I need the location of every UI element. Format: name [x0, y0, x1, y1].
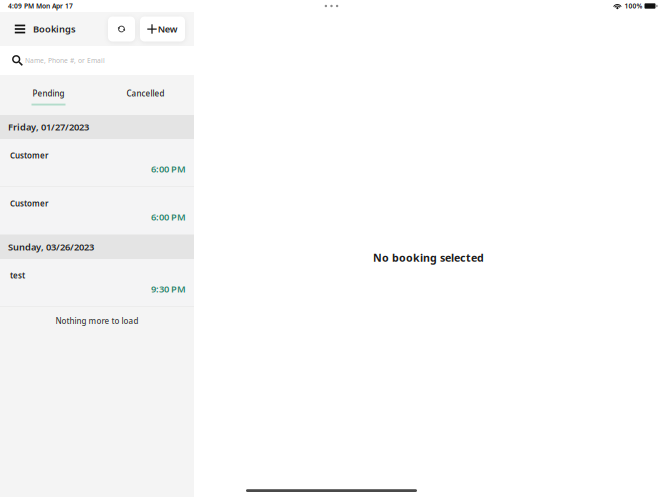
- button[interactable]: Pending: [0, 75, 97, 115]
- button[interactable]: New: [140, 16, 185, 41]
- staticText: 100%: [624, 2, 642, 10]
- staticText: 9:30 PM: [151, 283, 186, 295]
- staticText: Mon Apr 17: [36, 2, 73, 10]
- staticText: test: [10, 270, 25, 281]
- button[interactable]: Refresh: [108, 16, 135, 41]
- staticText: Pending: [32, 88, 64, 99]
- staticText: Nothing more to load: [55, 316, 138, 326]
- button[interactable]: Cancelled: [97, 75, 194, 115]
- staticText: 6:00 PM: [151, 211, 186, 223]
- staticText: Friday, 01/27/2023: [8, 121, 89, 133]
- staticText: Name, Phone #, or Email: [25, 56, 105, 65]
- staticText: 6:00 PM: [151, 163, 186, 175]
- staticText: Sunday, 03/26/2023: [8, 241, 94, 253]
- staticText: 4:09 PM: [8, 2, 34, 10]
- staticText: Cancelled: [126, 88, 164, 99]
- staticText: New: [158, 23, 178, 35]
- button[interactable]: test: [0, 259, 194, 307]
- staticText: Customer: [10, 150, 48, 161]
- button[interactable]: Customer: [0, 139, 194, 187]
- staticText: No booking selected: [373, 250, 484, 265]
- button[interactable]: Customer: [0, 187, 194, 235]
- staticText: Bookings: [33, 23, 76, 35]
- button[interactable]: Menu: [10, 12, 30, 46]
- staticText: Customer: [10, 198, 48, 209]
- button[interactable]: Name, Phone #, or Email: [0, 46, 194, 75]
